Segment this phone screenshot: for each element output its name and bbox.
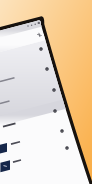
button[interactable]: Phone showing the menu screen — [0, 0, 92, 184]
